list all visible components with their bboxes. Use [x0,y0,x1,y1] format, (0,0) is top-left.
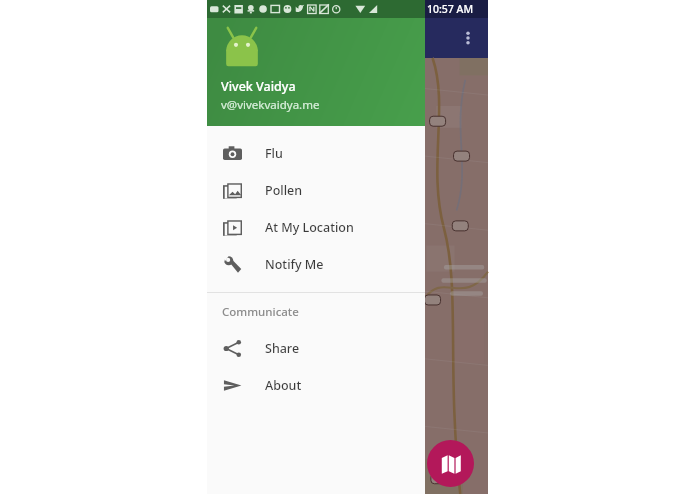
button[interactable]: At My Location [207,209,425,246]
button[interactable]: Pollen [207,172,425,209]
button[interactable]: Flu [207,135,425,172]
staticText: Notify Me [265,256,324,273]
staticText: Pollen [265,182,303,199]
button[interactable]: Notify Me [207,246,425,283]
staticText: Vivek Vaidya [221,78,296,95]
button[interactable]: Show map [427,440,474,487]
staticText: Communicate [222,304,299,320]
staticText: v@vivekvaidya.me [221,97,320,113]
staticText: 10:57 AM [427,2,474,16]
button[interactable]: About [207,367,425,404]
staticText: About [265,377,302,394]
staticText: Share [265,340,300,357]
staticText: At My Location [265,219,354,236]
button[interactable]: More options [457,27,479,49]
staticText: Flu [265,145,283,162]
button[interactable]: Share [207,330,425,367]
